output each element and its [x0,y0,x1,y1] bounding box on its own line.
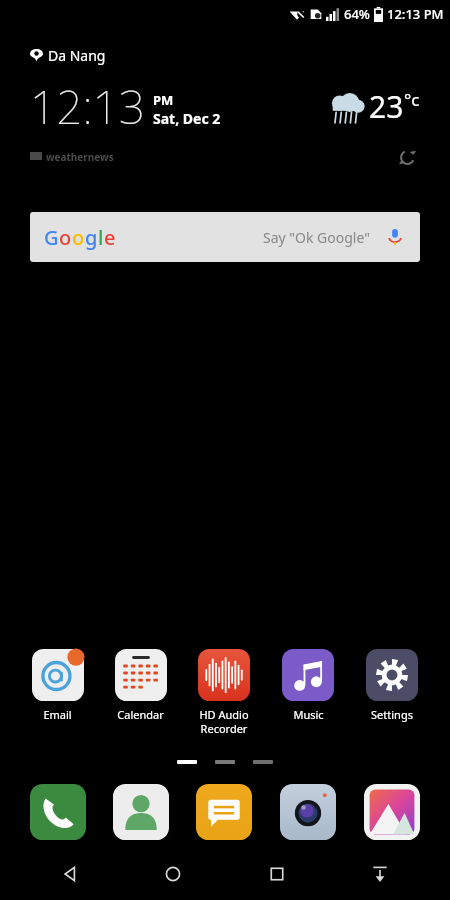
button[interactable]: Email [16,647,99,724]
staticText: o [59,224,72,251]
staticText: 12:13 PM [387,5,444,23]
staticText: Sat, Dec 2 [153,109,221,128]
button[interactable]: Da Nang [0,46,450,170]
button[interactable]: Contacts [99,784,182,840]
staticText: weathernews [46,150,114,164]
button[interactable]: Camera [266,784,350,840]
button[interactable]: Music [266,647,350,724]
button[interactable]: HD Audio Recorder [182,647,266,738]
button[interactable]: Refresh weather [394,144,420,170]
staticText: Calendar [117,707,164,722]
button[interactable]: Messages [182,784,266,840]
staticText: l [98,224,104,251]
staticText: G [44,224,59,251]
staticText: Settings [371,707,413,722]
staticText: Say "Ok Google" [263,228,370,247]
staticText: Da Nang [48,46,106,65]
button[interactable]: G [30,212,420,262]
other: Voice search [384,226,406,248]
button[interactable]: Phone [16,784,99,840]
button[interactable]: Recents [244,848,310,900]
staticText: o [72,224,85,251]
staticText: 12:13 [30,75,145,138]
staticText: Email [43,707,72,722]
staticText: °c [404,88,420,111]
staticText: Music [293,707,324,722]
staticText: HD Audio Recorder [199,707,249,736]
staticText: PM [153,91,174,109]
button[interactable]: Notifications [347,848,413,900]
button[interactable]: Back [37,848,103,900]
staticText: 23 [369,86,404,127]
button[interactable]: Home [140,848,206,900]
button[interactable]: Gallery [350,784,434,840]
button[interactable]: Settings [350,647,434,724]
staticText: e [104,224,116,251]
button[interactable]: Calendar [99,647,182,724]
staticText: g [85,224,98,251]
staticText: 64% [344,5,370,23]
